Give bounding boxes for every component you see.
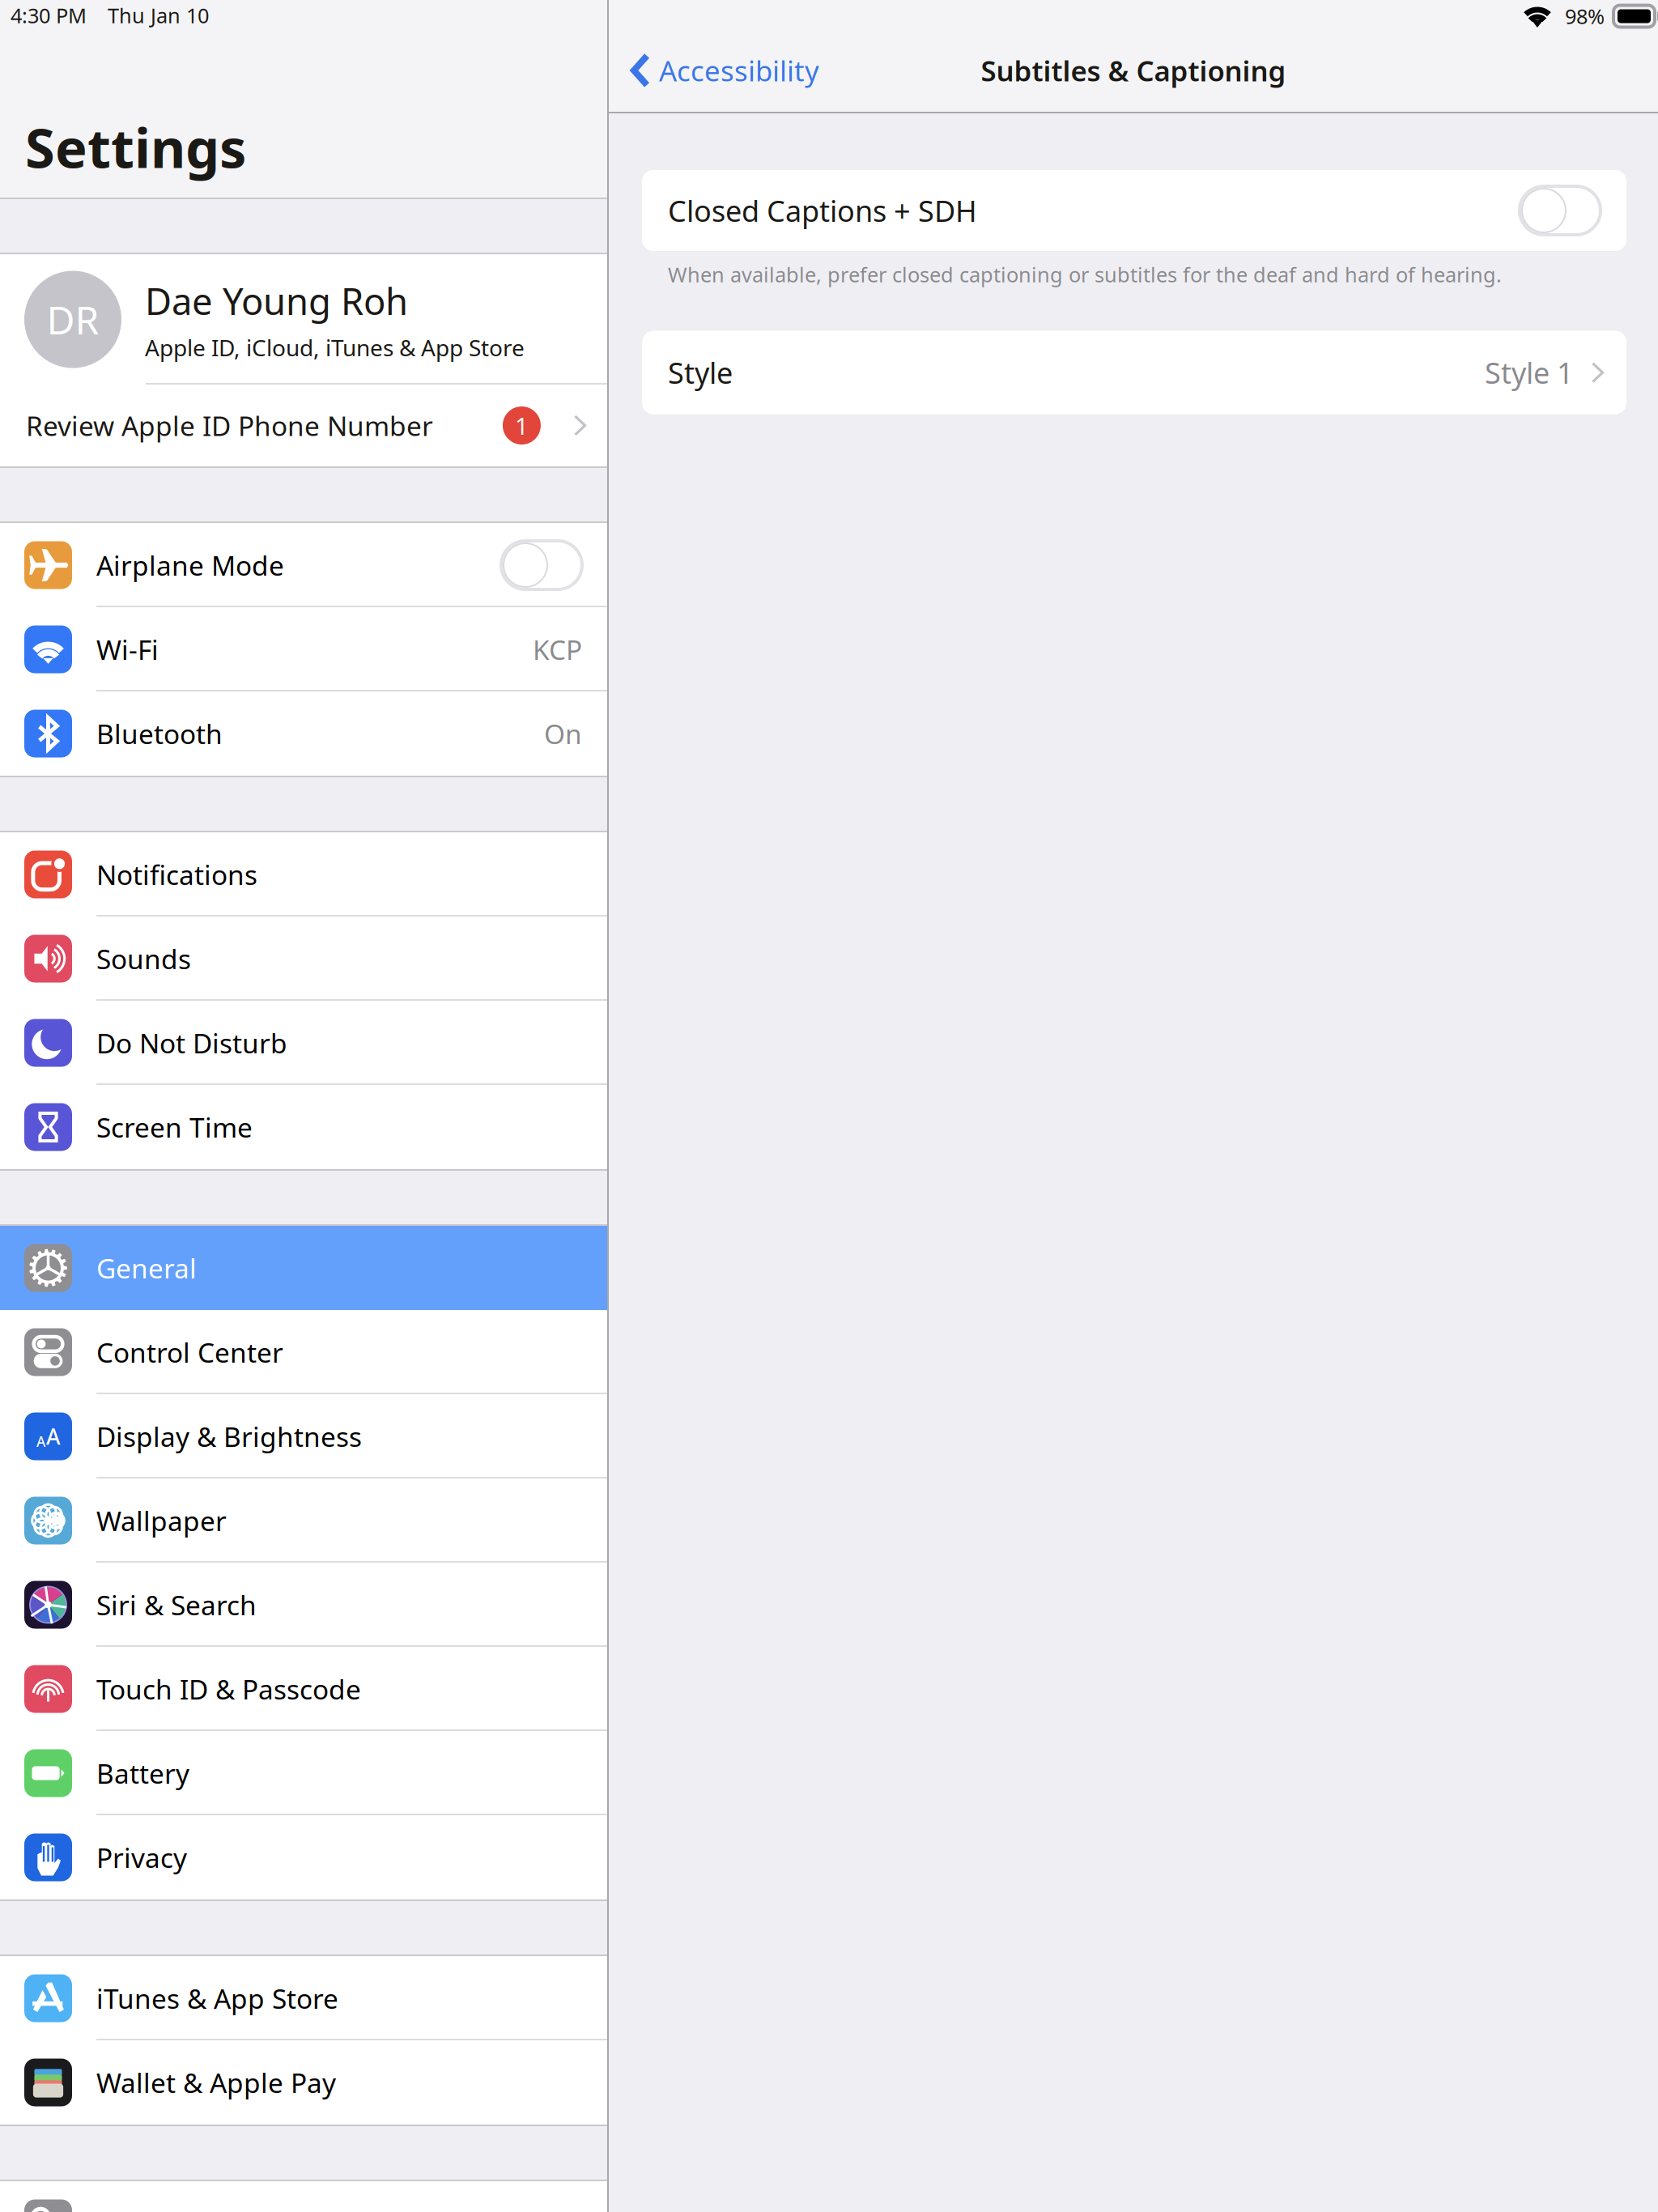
button[interactable]: Wallpaper — [0, 1478, 607, 1563]
staticText: Accessibility — [659, 52, 819, 89]
staticText: On — [544, 716, 582, 752]
staticText: Apple ID, iCloud, iTunes & App Store — [145, 332, 525, 362]
button[interactable]: iTunes & App Store — [0, 1956, 607, 2040]
button[interactable]: Wallet & Apple Pay — [0, 2040, 607, 2125]
staticText: Style — [668, 353, 733, 392]
button[interactable]: Sounds — [0, 917, 607, 1001]
staticText: Do Not Disturb — [96, 1025, 287, 1061]
button[interactable]: Control Center — [0, 1310, 607, 1394]
staticText: Control Center — [96, 1334, 283, 1370]
staticText: 4:30 PM — [11, 2, 87, 29]
button[interactable]: Review Apple ID Phone Number — [0, 385, 607, 466]
staticText: Touch ID & Passcode — [96, 1671, 361, 1707]
button[interactable]: Accounts & Passwords — [0, 2181, 607, 2212]
staticText: Dae Young Roh — [145, 276, 408, 325]
staticText: Notifications — [96, 857, 257, 892]
staticText: Siri & Search — [96, 1587, 257, 1623]
staticText: 1 — [515, 410, 529, 441]
button[interactable]: Notifications — [0, 832, 607, 917]
staticText: Sounds — [96, 941, 191, 977]
button[interactable]: Wi-Fi — [0, 607, 607, 691]
staticText: Wi-Fi — [96, 631, 159, 667]
staticText: Style 1 — [1485, 353, 1574, 392]
staticText: A — [36, 1432, 45, 1451]
button[interactable]: Style — [642, 331, 1626, 414]
staticText: Privacy — [96, 1839, 187, 1875]
button[interactable]: A — [0, 1394, 607, 1478]
staticText: Airplane Mode — [96, 547, 284, 583]
staticText: Display & Brightness — [96, 1418, 362, 1454]
button[interactable]: General — [0, 1226, 607, 1310]
staticText: A — [46, 1422, 60, 1451]
staticText: Subtitles & Captioning — [981, 52, 1286, 89]
staticText: Settings — [25, 111, 246, 183]
staticText: Review Apple ID Phone Number — [26, 408, 433, 443]
staticText: Wallpaper — [96, 1503, 227, 1539]
staticText: Thu Jan 10 — [108, 2, 209, 29]
button[interactable]: Airplane Mode — [0, 523, 607, 607]
staticText: iTunes & App Store — [96, 1980, 338, 2016]
staticText: Bluetooth — [96, 716, 223, 752]
staticText: When available, prefer closed captioning… — [668, 261, 1502, 288]
staticText: 98% — [1565, 3, 1605, 30]
button[interactable]: Touch ID & Passcode — [0, 1647, 607, 1731]
staticText: Battery — [96, 1755, 189, 1791]
staticText: DR — [47, 294, 99, 345]
staticText: Screen Time — [96, 1109, 253, 1145]
staticText: KCP — [533, 631, 582, 667]
button[interactable]: Do Not Disturb — [0, 1001, 607, 1085]
button[interactable]: Screen Time — [0, 1085, 607, 1169]
button[interactable]: Accessibility — [609, 40, 819, 100]
button[interactable]: Bluetooth — [0, 691, 607, 776]
button[interactable]: DR — [0, 254, 607, 385]
staticText: Closed Captions + SDH — [668, 191, 977, 230]
staticText: General — [96, 1250, 197, 1286]
button[interactable]: Siri & Search — [0, 1563, 607, 1647]
staticText: Wallet & Apple Pay — [96, 2065, 336, 2100]
button[interactable]: Battery — [0, 1731, 607, 1815]
button[interactable]: Privacy — [0, 1815, 607, 1899]
